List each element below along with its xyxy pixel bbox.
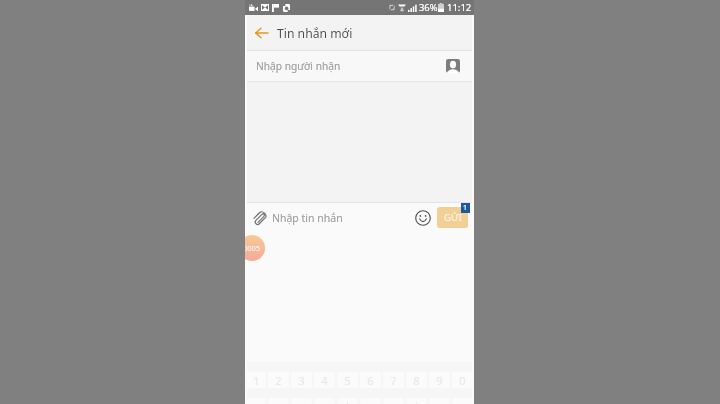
staticText: Tin nhắn mới — [277, 25, 353, 42]
staticText: 0 — [459, 373, 466, 388]
staticText: GỬI — [444, 211, 462, 224]
button[interactable]: 7 — [383, 372, 404, 388]
staticText: 36% — [419, 1, 438, 14]
button[interactable]: Back — [245, 15, 273, 50]
button[interactable]: Attach file — [251, 209, 269, 227]
staticText: 8 — [413, 373, 420, 388]
button[interactable]: Nhập tin nhắn — [272, 203, 413, 232]
button[interactable]: Contacts — [441, 54, 465, 78]
staticText: 1 — [253, 373, 260, 388]
button[interactable]: 0 — [452, 372, 473, 388]
staticText: 7 — [390, 373, 397, 388]
staticText: 1 — [463, 203, 468, 213]
staticText: t — [346, 398, 350, 404]
staticText: 9 — [436, 373, 443, 388]
button[interactable]: Nhập người nhận — [245, 51, 474, 81]
staticText: 2 — [275, 373, 282, 388]
button[interactable]: 2 — [268, 372, 289, 388]
staticText: 0005 — [245, 243, 261, 253]
button[interactable]: 8 — [406, 372, 427, 388]
button[interactable]: 4 — [314, 372, 335, 388]
staticText: 4 — [321, 373, 328, 388]
button[interactable]: Emoji — [413, 208, 432, 227]
staticText: Nhập tin nhắn — [272, 211, 343, 225]
staticText: i — [415, 398, 418, 404]
staticText: 5 — [344, 373, 351, 388]
button[interactable]: 9 — [429, 372, 450, 388]
staticText: 11:12 — [447, 1, 472, 14]
staticText: 3 — [298, 373, 305, 388]
staticText: Nhập người nhận — [256, 59, 341, 73]
button[interactable]: 3 — [291, 372, 312, 388]
button[interactable]: 6 — [360, 372, 381, 388]
button[interactable]: 1 — [246, 372, 266, 388]
button[interactable]: 5 — [337, 372, 358, 388]
staticText: 6 — [367, 373, 374, 388]
button[interactable]: GỬI — [437, 207, 468, 228]
